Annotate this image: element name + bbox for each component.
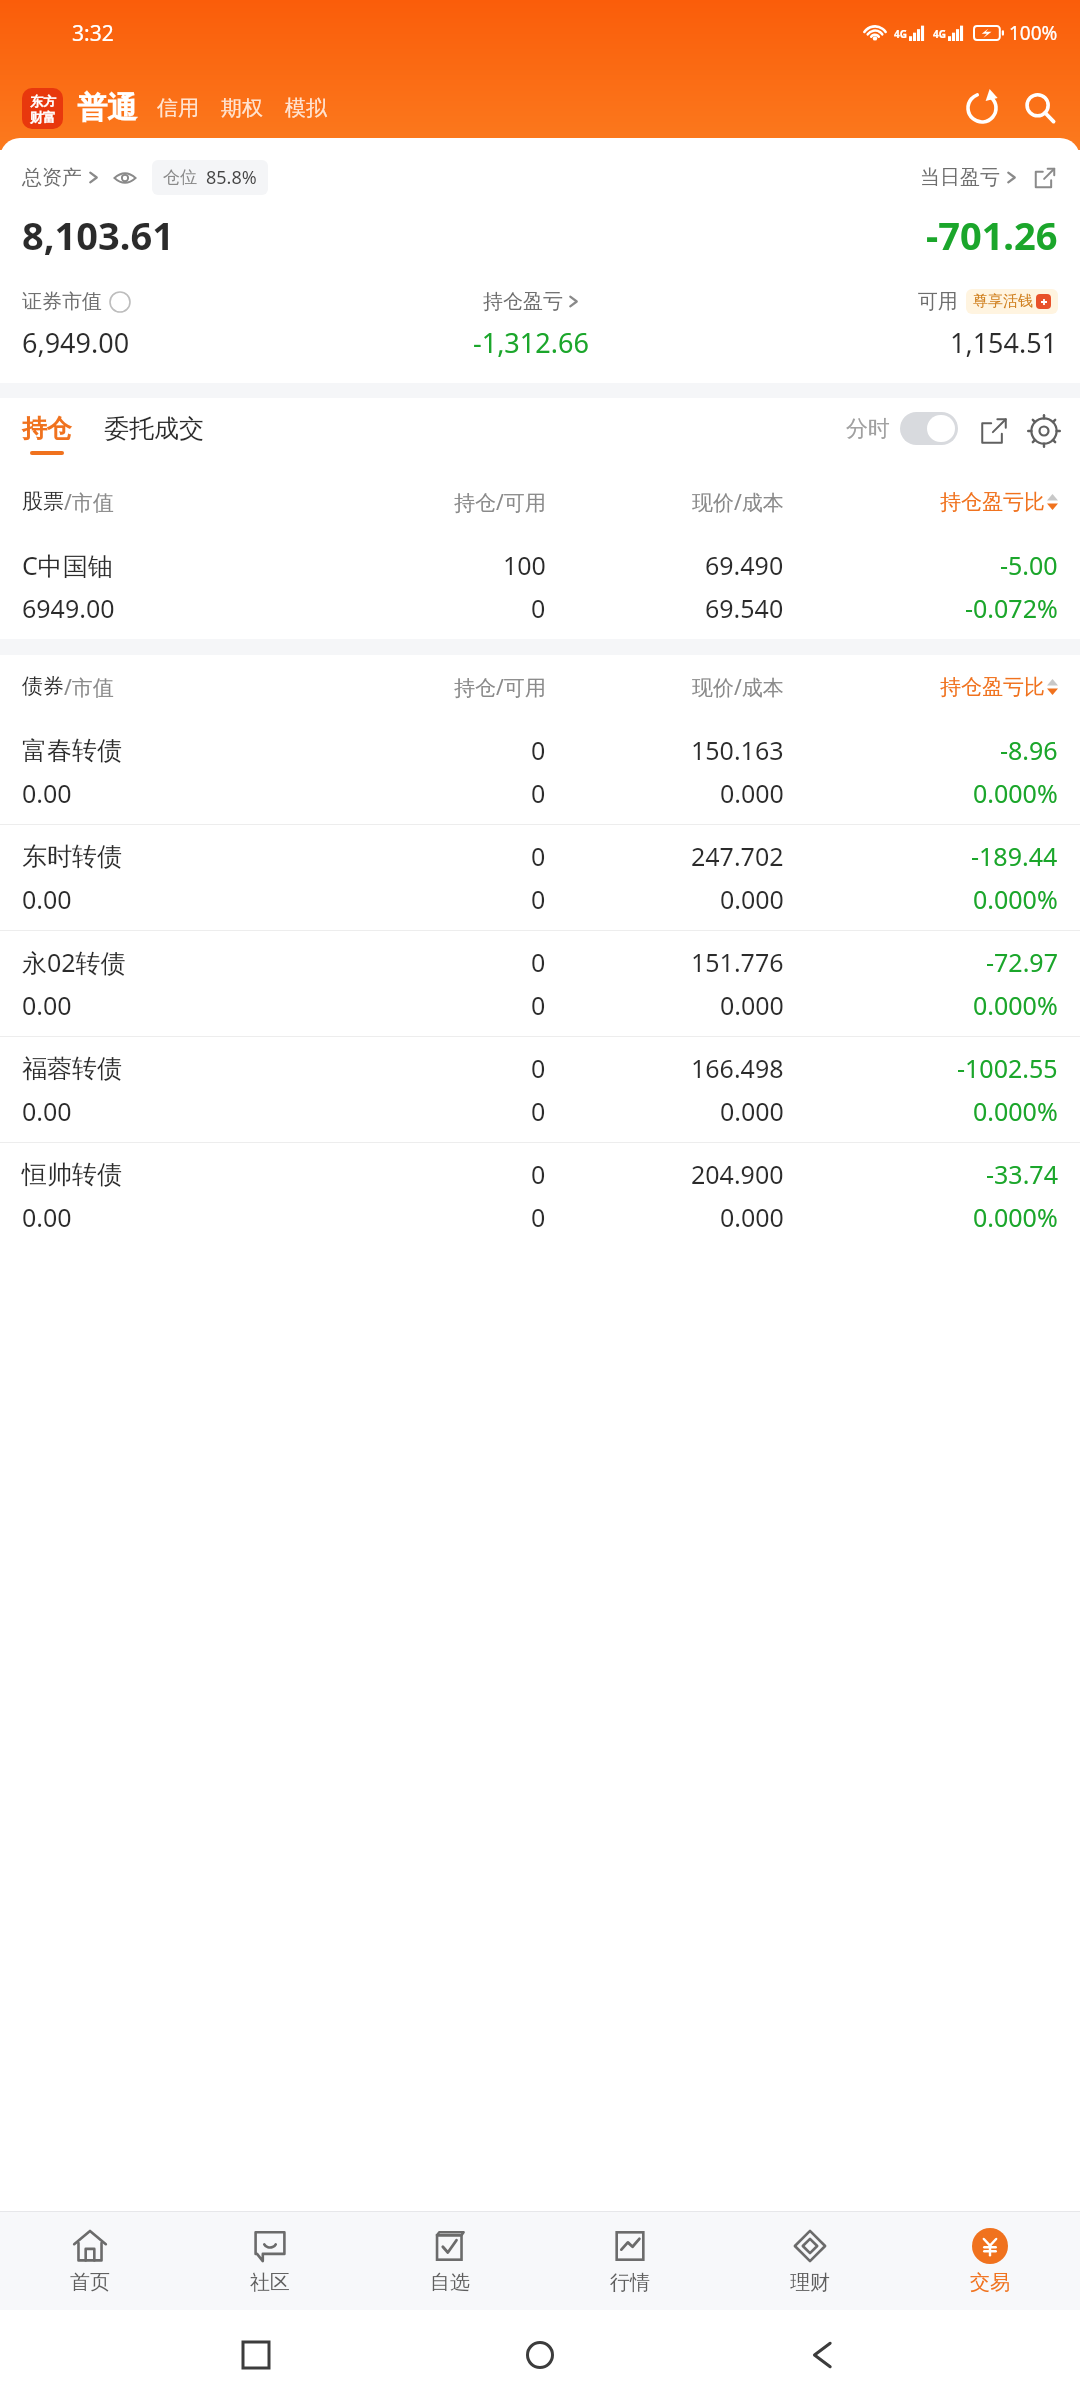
button[interactable]: 恒帅转债 xyxy=(0,1143,1080,1248)
staticText: 0.000% xyxy=(973,1200,1058,1234)
staticText: 6949.00 xyxy=(22,591,115,625)
button[interactable]: 当日盈亏 xyxy=(920,165,1018,190)
staticText: 委托成交 xyxy=(104,413,204,444)
button[interactable]: 期权 xyxy=(219,95,265,121)
staticText: 期权 xyxy=(221,95,263,121)
button[interactable]: Settings xyxy=(1026,416,1062,452)
staticText: 0.000% xyxy=(973,776,1058,810)
staticText: 0 xyxy=(531,1051,546,1085)
staticText: 0 xyxy=(531,776,546,810)
button[interactable]: 普通 xyxy=(77,89,137,127)
staticText: 现价/成本 xyxy=(692,488,784,517)
staticText: 现价/成本 xyxy=(692,673,784,702)
staticText: 0.00 xyxy=(22,1200,72,1234)
staticText: 0.000 xyxy=(720,776,784,810)
staticText: 0.000 xyxy=(720,1200,784,1234)
staticText: 富春转债 xyxy=(22,735,122,766)
staticText: 普通 xyxy=(77,89,137,127)
staticText: 分时 xyxy=(846,415,890,443)
staticText: 85.8% xyxy=(206,165,257,190)
staticText: 0.000% xyxy=(973,1094,1058,1128)
button[interactable]: 持仓盈亏 xyxy=(483,289,580,314)
staticText: 0.00 xyxy=(22,988,72,1022)
button[interactable]: 信用 xyxy=(155,95,201,121)
button[interactable]: 福蓉转债 xyxy=(0,1037,1080,1142)
button[interactable]: 持仓 xyxy=(22,413,72,455)
button[interactable]: 总资产 xyxy=(22,165,100,190)
staticText: 持仓 xyxy=(22,413,72,444)
staticText: 恒帅转债 xyxy=(22,1159,122,1190)
staticText: 69.540 xyxy=(705,591,784,625)
button[interactable]: Back xyxy=(796,2327,852,2383)
button[interactable]: Refresh xyxy=(960,86,1004,130)
button[interactable]: Search xyxy=(1018,86,1062,130)
staticText: 可用 xyxy=(918,289,958,314)
staticText: 0.000 xyxy=(720,882,784,916)
staticText: 首页 xyxy=(70,2270,110,2295)
staticText: 6,949.00 xyxy=(22,324,130,361)
button[interactable]: C中国铀 xyxy=(0,534,1080,639)
staticText: 166.498 xyxy=(691,1051,784,1085)
button[interactable]: 富春转债 xyxy=(0,719,1080,824)
staticText: 证券市值 xyxy=(22,289,102,314)
staticText: -1,312.66 xyxy=(473,324,589,361)
button[interactable]: 东时转债 xyxy=(0,825,1080,930)
button[interactable]: Recents xyxy=(228,2327,284,2383)
staticText: 股票 xyxy=(22,488,64,514)
staticText: 持仓盈亏比 xyxy=(940,489,1045,515)
staticText: 0 xyxy=(531,882,546,916)
staticText: -1002.55 xyxy=(957,1051,1058,1085)
staticText: 3:32 xyxy=(72,19,114,48)
button[interactable]: 尊享活钱 xyxy=(966,289,1058,314)
staticText: 总资产 xyxy=(22,165,82,190)
staticText: 0.000 xyxy=(720,1094,784,1128)
staticText: 0 xyxy=(531,988,546,1022)
staticText: -701.26 xyxy=(926,209,1058,261)
staticText: 204.900 xyxy=(691,1157,784,1191)
staticText: 4G xyxy=(933,27,946,41)
staticText: /市值 xyxy=(64,673,114,702)
button[interactable]: 社区 xyxy=(180,2212,360,2310)
staticText: -0.072% xyxy=(965,591,1058,625)
staticText: 行情 xyxy=(610,2270,650,2295)
staticText: 持仓/可用 xyxy=(454,488,546,517)
staticText: 0 xyxy=(531,591,546,625)
staticText: 0 xyxy=(531,1157,546,1191)
staticText: 8,103.61 xyxy=(22,209,174,261)
staticText: 债券 xyxy=(22,673,64,699)
button[interactable]: 东方 xyxy=(22,88,63,129)
staticText: -33.74 xyxy=(986,1157,1058,1191)
button[interactable]: 行情 xyxy=(540,2212,720,2310)
staticText: 0 xyxy=(531,1094,546,1128)
button[interactable]: Open detail xyxy=(1032,165,1058,191)
staticText: 0 xyxy=(531,839,546,873)
button[interactable]: Toggle time mode xyxy=(900,412,958,445)
button[interactable]: 首页 xyxy=(0,2212,180,2310)
staticText: -5.00 xyxy=(1000,548,1058,582)
staticText: 社区 xyxy=(250,2270,290,2295)
staticText: 当日盈亏 xyxy=(920,165,1000,190)
button[interactable]: 永02转债 xyxy=(0,931,1080,1036)
staticText: 自选 xyxy=(430,2270,470,2295)
staticText: 模拟 xyxy=(285,95,327,121)
button[interactable]: Expand xyxy=(976,416,1012,452)
staticText: 247.702 xyxy=(691,839,784,873)
button[interactable]: 模拟 xyxy=(283,95,329,121)
button[interactable]: 理财 xyxy=(720,2212,900,2310)
staticText: 理财 xyxy=(790,2270,830,2295)
staticText: 1,154.51 xyxy=(950,324,1058,361)
button[interactable]: 证券市值 xyxy=(22,289,131,314)
button[interactable]: 仓位 xyxy=(152,160,268,195)
staticText: /市值 xyxy=(64,488,114,517)
staticText: 100% xyxy=(1009,20,1058,46)
staticText: 持仓盈亏比 xyxy=(940,674,1045,700)
staticText: 4G xyxy=(894,27,907,41)
staticText: 0.000% xyxy=(973,988,1058,1022)
staticText: -189.44 xyxy=(971,839,1058,873)
button[interactable]: 委托成交 xyxy=(104,413,204,455)
button[interactable]: 自选 xyxy=(360,2212,540,2310)
staticText: 0.00 xyxy=(22,1094,72,1128)
button[interactable]: 交易 xyxy=(900,2212,1080,2310)
button[interactable]: Home xyxy=(512,2327,568,2383)
button[interactable]: Toggle visibility xyxy=(112,165,138,191)
